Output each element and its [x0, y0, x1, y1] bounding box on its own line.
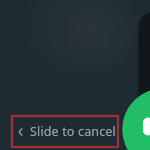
staticText: Slide to cancel: [30, 123, 116, 140]
button[interactable]: Slide to cancel: [12, 116, 118, 147]
button[interactable]: Send voice message: [121, 92, 150, 150]
